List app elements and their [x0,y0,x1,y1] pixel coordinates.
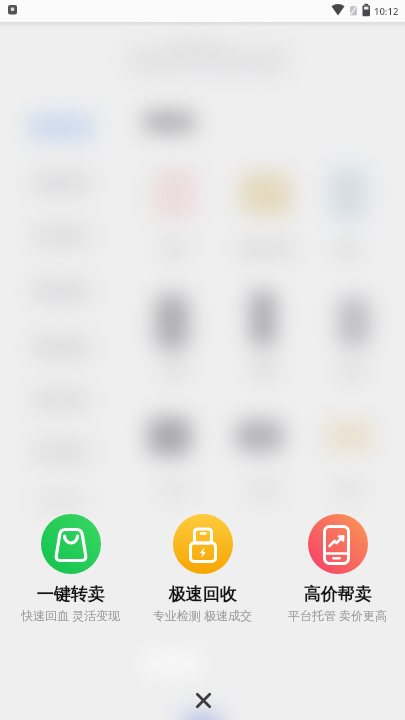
staticText: 高价帮卖 [270,584,405,605]
button[interactable]: 极速回收 [135,514,270,623]
staticText: 一键转卖 [3,584,138,605]
button[interactable] [189,686,217,714]
button[interactable]: 一键转卖 [3,514,138,623]
button[interactable]: 高价帮卖 [270,514,405,623]
staticText: 专业检测 极速成交 [135,607,270,623]
staticText: 极速回收 [135,584,270,605]
staticText: 快速回血 灵活变现 [3,607,138,623]
staticText: 10:12 [374,5,399,18]
staticText: 平台托管 卖价更高 [270,607,405,623]
